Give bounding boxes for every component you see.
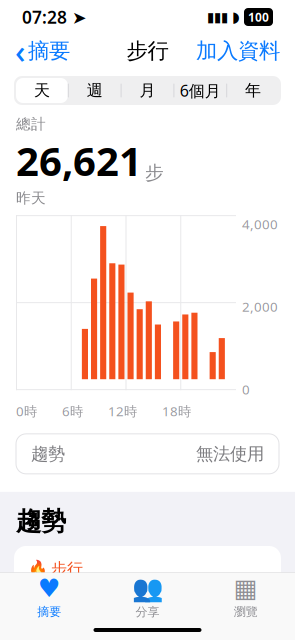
- staticText: 週: [87, 81, 103, 100]
- staticText: 總計: [16, 115, 46, 133]
- button[interactable]: 月: [122, 78, 173, 103]
- button[interactable]: 🔥: [0, 546, 295, 640]
- staticText: 步行: [51, 559, 83, 579]
- staticText: 月: [139, 81, 155, 100]
- staticText: 天: [34, 81, 50, 100]
- staticText: 分享: [135, 605, 159, 619]
- staticText: 平均而言,你過去 5 天每天走的步數較多。: [28, 588, 257, 632]
- staticText: 步: [145, 161, 164, 184]
- button[interactable]: 週: [69, 78, 121, 103]
- staticText: 2,000: [242, 298, 278, 315]
- button[interactable]: ♥: [0, 573, 98, 620]
- staticText: 12時: [108, 402, 137, 420]
- staticText: 年: [245, 81, 261, 100]
- staticText: 無法使用: [196, 443, 264, 464]
- staticText: 瀏覽: [234, 604, 258, 619]
- staticText: 0: [242, 380, 250, 398]
- button[interactable]: ▦: [197, 573, 295, 620]
- staticText: 步行: [126, 38, 168, 64]
- staticText: ♥: [38, 574, 61, 603]
- staticText: 6個月: [180, 80, 221, 101]
- staticText: 趨勢: [31, 443, 65, 464]
- staticText: 昨天: [16, 189, 46, 207]
- staticText: 6時: [62, 402, 83, 420]
- button[interactable]: 6個月: [174, 78, 226, 103]
- button[interactable]: 天: [16, 78, 68, 103]
- staticText: 摘要: [37, 604, 61, 619]
- staticText: 👥: [131, 574, 163, 603]
- button[interactable]: 趨勢: [0, 434, 295, 474]
- button[interactable]: 👥: [98, 573, 197, 620]
- staticText: 26,621: [16, 134, 142, 187]
- staticText: ▦: [234, 574, 258, 603]
- staticText: 摘要: [28, 38, 70, 64]
- button[interactable]: 加入資料: [188, 34, 288, 68]
- button[interactable]: ‹: [7, 26, 78, 76]
- staticText: 0時: [16, 402, 37, 420]
- staticText: 18時: [162, 402, 191, 420]
- staticText: ◗: [232, 9, 240, 25]
- staticText: 趨勢: [16, 506, 66, 537]
- staticText: ‹: [15, 30, 25, 72]
- staticText: 4,000: [242, 215, 278, 233]
- staticText: ▮▮▮: [207, 9, 228, 24]
- staticText: 07:28 ➤: [22, 5, 87, 28]
- staticText: 100: [248, 9, 269, 25]
- staticText: 加入資料: [196, 38, 280, 64]
- button[interactable]: 年: [227, 78, 279, 103]
- staticText: 🔥: [28, 560, 48, 578]
